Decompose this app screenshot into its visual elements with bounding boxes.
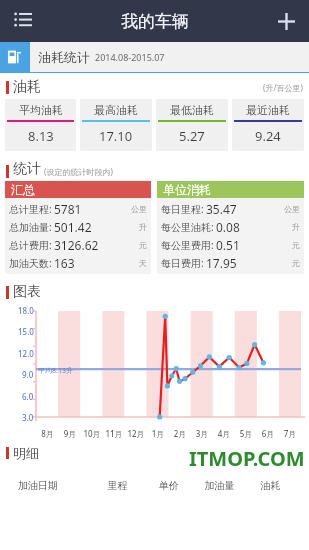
staticText: 2014.08-2015.07 — [95, 51, 165, 63]
staticText: (设定的统计时段内) — [44, 166, 113, 177]
staticText: 35.47 — [206, 201, 237, 217]
staticText: 升 — [139, 222, 147, 232]
staticText: 单价 — [144, 479, 193, 492]
staticText: 163 — [54, 255, 75, 271]
staticText: 平均油耗 — [19, 103, 63, 117]
staticText: 2月 — [169, 428, 191, 439]
staticText: 5.27 — [179, 127, 205, 145]
staticText: 每公里油耗: — [161, 220, 214, 234]
staticText: 最低油耗 — [170, 103, 214, 117]
staticText: 17.95 — [206, 255, 237, 271]
staticText: 元 — [139, 240, 147, 250]
staticText: 升 — [292, 222, 300, 232]
staticText: 油耗 — [246, 479, 295, 492]
staticText: 总计里程: — [9, 202, 52, 216]
staticText: 我的车辆 — [121, 11, 189, 32]
staticText: 501.42 — [54, 219, 92, 235]
staticText: 3.0 — [22, 412, 34, 423]
staticText: 每公里费用: — [161, 238, 214, 252]
staticText: 公里 — [131, 204, 147, 214]
staticText: 15.0 — [18, 326, 34, 337]
staticText: 9.24 — [255, 127, 281, 145]
staticText: 油耗统计 — [38, 49, 90, 65]
staticText: 单位消耗 — [163, 182, 211, 197]
staticText: 加油量 — [193, 479, 246, 492]
staticText: 每日费用: — [161, 256, 204, 270]
button[interactable]: 单位消耗 — [157, 181, 304, 274]
staticText: 8月 — [36, 428, 59, 439]
staticText: 汇总 — [11, 182, 35, 197]
staticText: 18.0 — [18, 305, 34, 316]
staticText: 明细 — [13, 445, 39, 461]
staticText: 9月 — [59, 428, 81, 439]
staticText: 7月 — [279, 428, 301, 439]
staticText: 9.0 — [22, 369, 34, 380]
button[interactable]: 平均油耗 — [5, 99, 76, 151]
staticText: 总计费用: — [9, 238, 52, 252]
staticText: 6.0 — [22, 391, 34, 402]
staticText: 3月 — [191, 428, 213, 439]
staticText: 10月 — [81, 428, 103, 439]
staticText: 平均8.13升 — [38, 366, 73, 376]
staticText: 公里 — [284, 204, 300, 214]
button[interactable]: Menu — [6, 4, 40, 38]
staticText: 5月 — [235, 428, 257, 439]
staticText: 元 — [292, 258, 300, 268]
staticText: 最高油耗 — [94, 103, 138, 117]
staticText: 油耗 — [13, 78, 41, 96]
staticText: (升/百公里) — [263, 82, 303, 93]
staticText: 12.0 — [18, 348, 34, 359]
staticText: 加油天数: — [9, 256, 52, 270]
staticText: 11月 — [103, 428, 125, 439]
staticText: 3126.62 — [54, 237, 99, 253]
staticText: 统计 — [13, 160, 41, 178]
staticText: 总加油量: — [9, 220, 52, 234]
button[interactable]: 汇总 — [5, 181, 151, 274]
staticText: 加油日期 — [18, 479, 91, 492]
staticText: 0.51 — [216, 237, 240, 253]
staticText: 6月 — [257, 428, 279, 439]
staticText: 8.13 — [28, 127, 54, 145]
staticText: 里程 — [91, 479, 144, 492]
button[interactable]: 最低油耗 — [156, 99, 228, 151]
staticText: 最近油耗 — [246, 103, 290, 117]
staticText: 每日里程: — [161, 202, 204, 216]
button[interactable]: 最近油耗 — [232, 99, 304, 151]
button[interactable]: Fuel — [0, 42, 30, 72]
staticText: 4月 — [213, 428, 235, 439]
staticText: 天 — [139, 258, 147, 268]
staticText: 1月 — [147, 428, 169, 439]
button[interactable]: Add — [269, 4, 303, 38]
staticText: 图表 — [13, 283, 41, 301]
staticText: 元 — [292, 240, 300, 250]
staticText: ITMOP.COM — [189, 445, 305, 472]
button[interactable]: 最高油耗 — [80, 99, 152, 151]
staticText: 5781 — [54, 201, 82, 217]
staticText: 12月 — [125, 428, 147, 439]
staticText: 0.08 — [216, 219, 240, 235]
staticText: 17.10 — [99, 127, 133, 145]
